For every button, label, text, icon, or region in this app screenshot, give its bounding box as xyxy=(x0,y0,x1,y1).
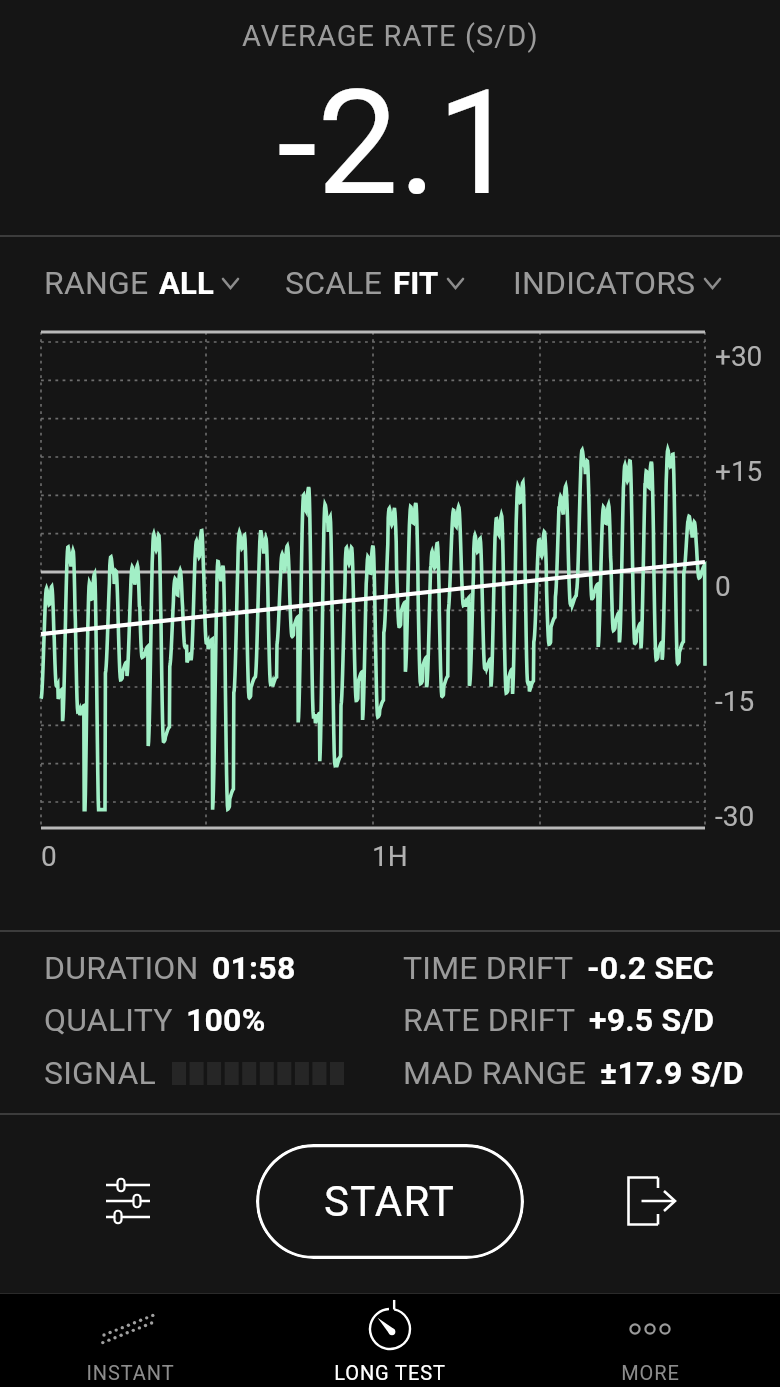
staticText: INSTANT xyxy=(86,1361,175,1384)
staticText: 01:58 xyxy=(212,949,296,987)
staticText: -15 xyxy=(715,685,755,718)
staticText: RATE DRIFT xyxy=(403,1001,576,1039)
button[interactable]: MORE xyxy=(520,1294,780,1387)
staticText: SCALE xyxy=(285,264,383,302)
staticText: -30 xyxy=(715,800,755,833)
staticText: 1H xyxy=(372,840,408,873)
staticText: ALL xyxy=(159,265,214,301)
staticText: 0 xyxy=(41,840,57,873)
button[interactable]: RANGE xyxy=(44,264,238,302)
staticText: 100% xyxy=(186,1001,266,1039)
button[interactable]: Settings xyxy=(0,1114,256,1288)
staticText: SIGNAL xyxy=(44,1054,156,1092)
button[interactable]: Export xyxy=(524,1114,780,1288)
staticText: LONG TEST xyxy=(334,1361,446,1384)
button[interactable]: INDICATORS xyxy=(513,264,720,302)
staticText: TIME DRIFT xyxy=(403,949,574,987)
staticText: START xyxy=(324,1177,456,1226)
staticText: +9.5 S/D xyxy=(589,1001,715,1039)
staticText: -0.2 SEC xyxy=(587,949,714,987)
staticText: 0 xyxy=(715,570,731,603)
button[interactable]: SCALE xyxy=(285,264,463,302)
staticText: +30 xyxy=(715,340,763,373)
staticText: INDICATORS xyxy=(513,264,696,302)
staticText: -2.1 xyxy=(277,58,519,228)
button[interactable]: START xyxy=(256,1144,524,1259)
staticText: ±17.9 S/D xyxy=(600,1054,744,1092)
button[interactable]: INSTANT xyxy=(0,1294,260,1387)
staticText: AVERAGE RATE (S/D) xyxy=(242,19,539,53)
staticText: QUALITY xyxy=(44,1001,173,1039)
button[interactable]: LONG TEST xyxy=(260,1294,520,1387)
staticText: +15 xyxy=(715,455,763,488)
staticText: FIT xyxy=(393,265,439,301)
staticText: MORE xyxy=(621,1361,680,1384)
staticText: RANGE xyxy=(44,264,149,302)
staticText: DURATION xyxy=(44,949,199,987)
staticText: MAD RANGE xyxy=(403,1054,587,1092)
